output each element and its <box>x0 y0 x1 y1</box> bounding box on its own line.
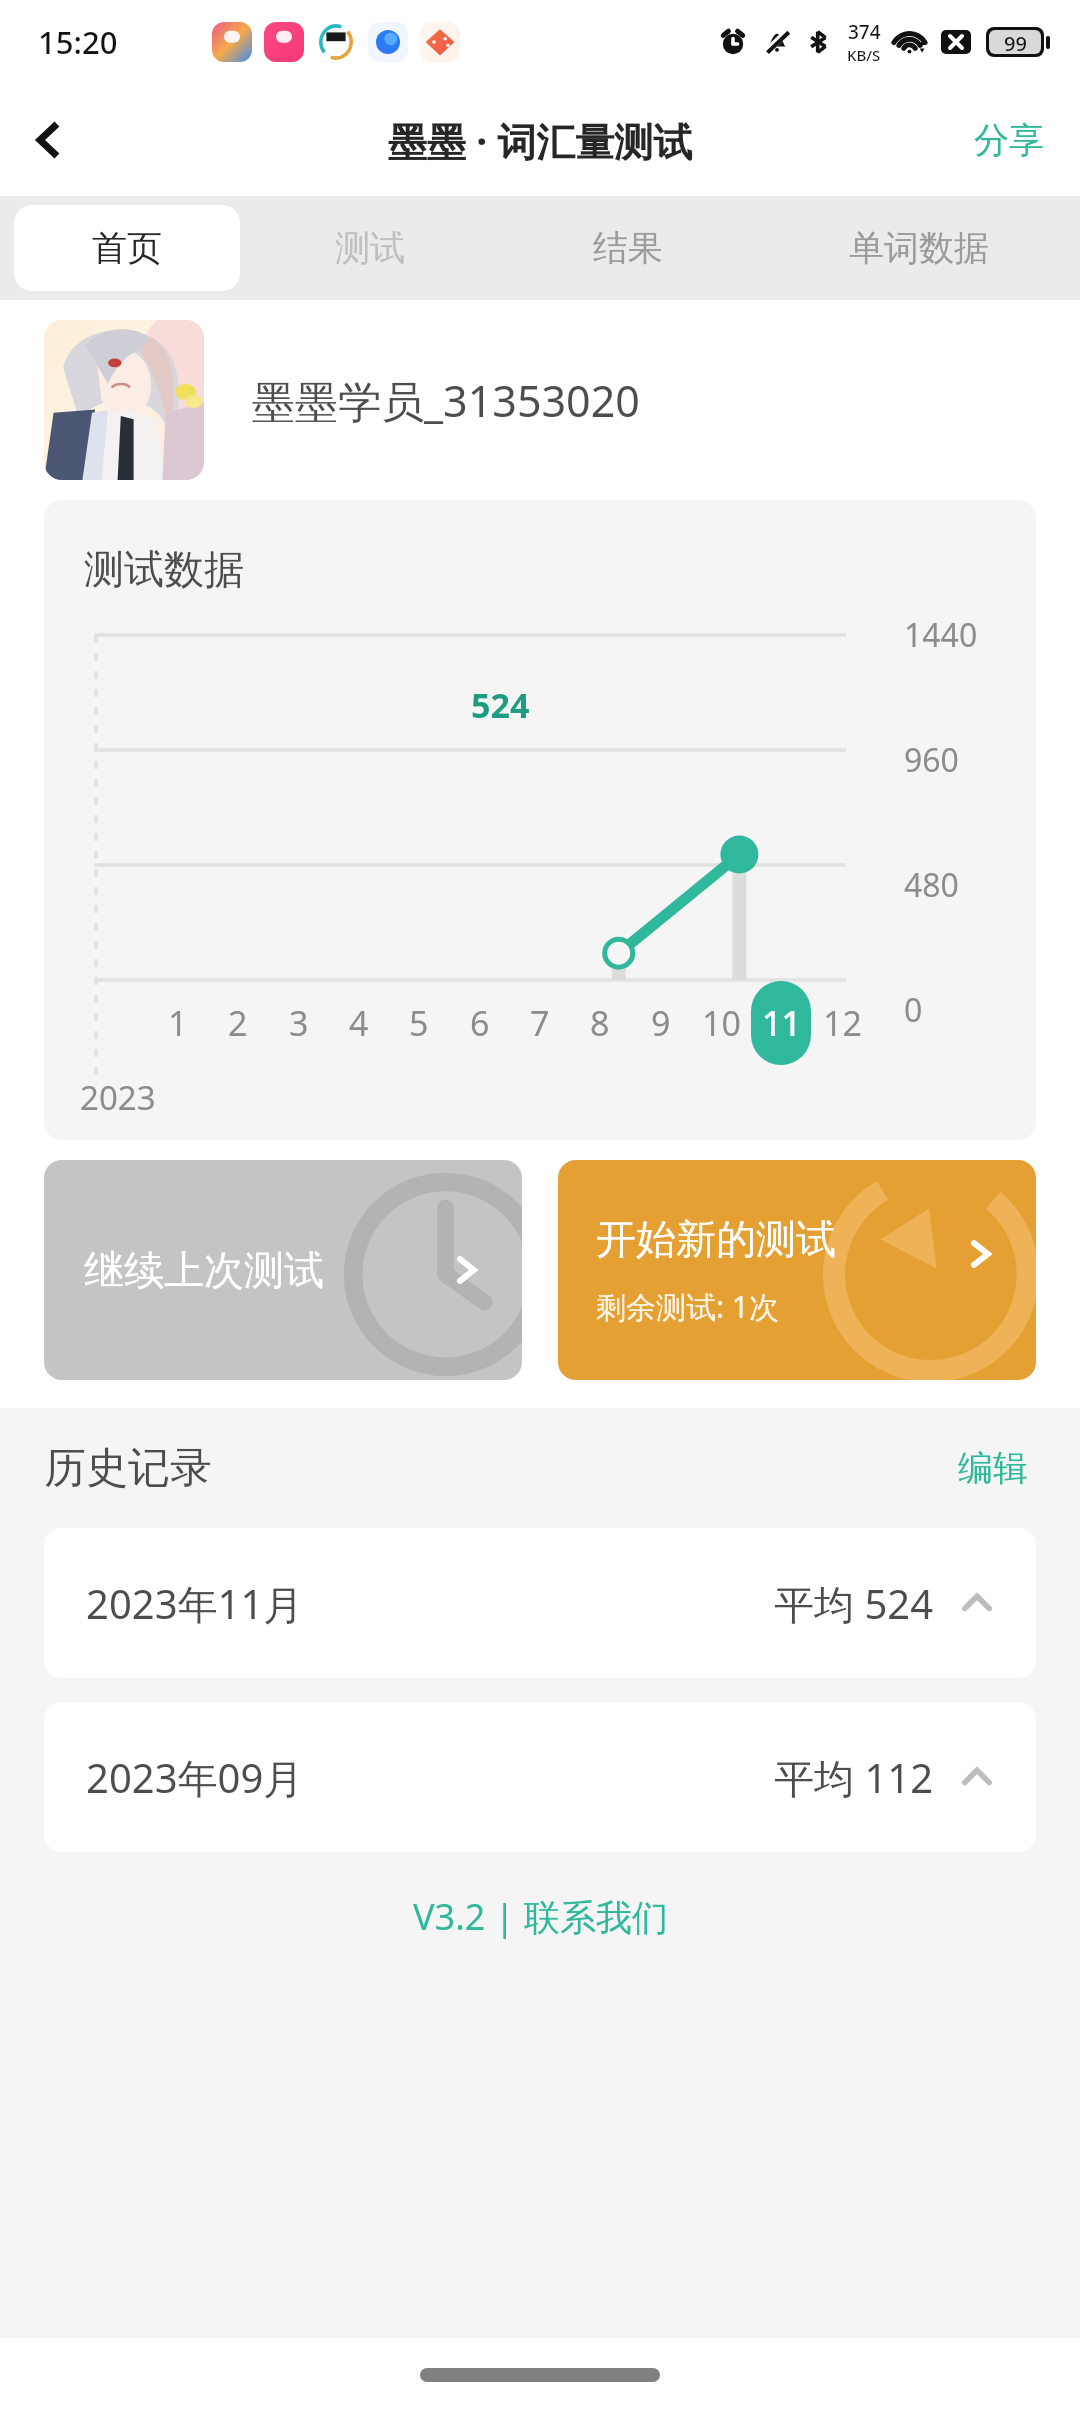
button[interactable]: 测试 <box>240 196 499 300</box>
staticText: 首页 <box>92 226 162 270</box>
staticText: KB/S <box>847 45 881 65</box>
staticText: 1 <box>168 1000 188 1046</box>
staticText: 编辑 <box>958 1446 1028 1490</box>
staticText: 480 <box>904 863 959 907</box>
staticText: 平均 524 <box>774 1576 934 1631</box>
staticText: 99 <box>1004 30 1027 54</box>
staticText: 4 <box>349 1000 369 1046</box>
staticText: 5 <box>409 1000 429 1046</box>
button[interactable]: 开始新的测试 <box>558 1160 1036 1380</box>
staticText: 960 <box>904 738 959 782</box>
staticText: 11 <box>762 1000 801 1046</box>
staticText: 墨墨学员_31353020 <box>252 371 640 430</box>
staticText: 10 <box>702 1000 741 1046</box>
staticText: 2 <box>228 1000 248 1046</box>
button[interactable]: V3.2 | 联系我们 <box>403 1882 678 1951</box>
staticText: 15:20 <box>38 21 118 63</box>
staticText: V3.2 | 联系我们 <box>413 1892 668 1941</box>
staticText: 3 <box>289 1000 309 1046</box>
staticText: 继续上次测试 <box>84 1245 324 1295</box>
staticText: 剩余测试: 1次 <box>596 1286 779 1327</box>
staticText: 墨墨 · 词汇量测试 <box>388 114 693 167</box>
staticText: 平均 112 <box>774 1750 934 1805</box>
staticText: 1440 <box>904 613 978 657</box>
staticText: 单词数据 <box>849 226 989 270</box>
staticText: 6 <box>470 1000 490 1046</box>
staticText: 8 <box>590 1000 610 1046</box>
button[interactable]: 分享 <box>938 98 1080 182</box>
button[interactable]: Back <box>0 92 96 188</box>
staticText: 2023年09月 <box>86 1750 304 1805</box>
button[interactable]: 继续上次测试 <box>44 1160 522 1380</box>
staticText: 12 <box>823 1000 862 1046</box>
button[interactable]: 编辑 <box>950 1438 1036 1498</box>
staticText: 2023 <box>80 1075 156 1120</box>
staticText: 9 <box>651 1000 671 1046</box>
staticText: 0 <box>904 988 923 1032</box>
staticText: 测试 <box>335 226 405 270</box>
button[interactable]: 首页 <box>14 205 240 291</box>
staticText: 2023年11月 <box>86 1576 304 1631</box>
button[interactable]: 结果 <box>499 196 757 300</box>
button[interactable]: 单词数据 <box>757 196 1080 300</box>
staticText: 524 <box>471 682 530 728</box>
staticText: 测试数据 <box>84 544 244 594</box>
staticText: 结果 <box>593 226 663 270</box>
staticText: 7 <box>530 1000 550 1046</box>
staticText: 开始新的测试 <box>596 1214 836 1264</box>
button[interactable]: 2023年09月 <box>44 1702 1036 1852</box>
button[interactable]: 2023年11月 <box>44 1528 1036 1678</box>
staticText: 分享 <box>974 118 1044 162</box>
staticText: 历史记录 <box>44 1442 212 1495</box>
staticText: 374 <box>848 19 881 45</box>
